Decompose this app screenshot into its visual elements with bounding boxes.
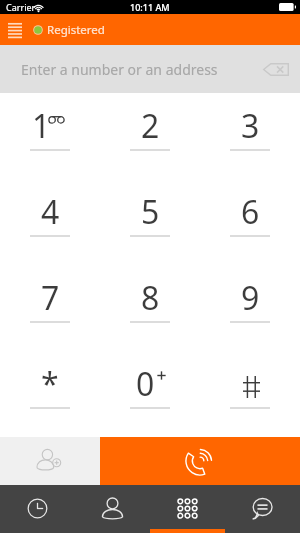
staticText: 10:11 AM (130, 1, 170, 13)
button[interactable] (200, 351, 300, 437)
button[interactable]: Contacts (75, 485, 150, 533)
staticText: * (41, 362, 59, 406)
staticText: 6 (241, 190, 260, 234)
button[interactable]: 4 (0, 179, 100, 265)
button[interactable]: 1 (0, 93, 100, 179)
button[interactable]: Backspace (256, 45, 300, 93)
button[interactable]: 2 (100, 93, 200, 179)
button[interactable]: 5 (100, 179, 200, 265)
button[interactable]: 7 (0, 265, 100, 351)
button[interactable]: Call (100, 437, 300, 485)
button[interactable]: 8 (100, 265, 200, 351)
button[interactable]: Keypad (150, 485, 225, 533)
button[interactable]: Recents (0, 485, 75, 533)
staticText: 1 (32, 104, 51, 148)
staticText: Enter a number or an address (21, 60, 218, 79)
staticText: 8 (141, 276, 160, 320)
button[interactable]: 3 (200, 93, 300, 179)
button[interactable]: 6 (200, 179, 300, 265)
staticText: 4 (41, 190, 60, 234)
staticText: Carrier (6, 1, 36, 13)
button[interactable]: Add contact (0, 437, 100, 485)
staticText: Registered (47, 22, 105, 38)
staticText: 0 (136, 362, 155, 406)
staticText: 3 (241, 104, 260, 148)
button[interactable]: * (0, 351, 100, 437)
staticText: 7 (41, 276, 60, 320)
staticText: 5 (141, 190, 160, 234)
button[interactable]: Messages (225, 485, 300, 533)
staticText: 9 (241, 276, 260, 320)
button[interactable]: Open menu (0, 14, 30, 45)
staticText: 2 (141, 104, 160, 148)
button[interactable]: 9 (200, 265, 300, 351)
button[interactable]: 0 (100, 351, 200, 437)
